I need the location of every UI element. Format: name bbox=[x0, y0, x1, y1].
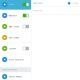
staticText: Location bbox=[9, 47, 16, 50]
staticText: Nearby devices bbox=[9, 75, 22, 78]
staticText: Data usage bbox=[9, 36, 19, 39]
staticText: Connected bbox=[33, 9, 42, 12]
staticText: SCANNING bbox=[71, 2, 78, 4]
button[interactable]: Bluetooth bbox=[0, 10, 31, 21]
button[interactable]: Data usage bbox=[0, 32, 31, 43]
staticText: Flight mode bbox=[9, 25, 19, 28]
staticText: Bluetooth bbox=[9, 14, 17, 17]
staticText: More networks bbox=[9, 58, 24, 61]
button[interactable]: More networks bbox=[0, 54, 31, 65]
button[interactable]: Nearby devices bbox=[0, 72, 31, 80]
staticText: Wi-Fi bbox=[9, 3, 13, 6]
button[interactable]: Location bbox=[0, 43, 31, 54]
staticText: CONNECT AND SHARE bbox=[2, 69, 17, 71]
staticText: WI-FI NETWORKS bbox=[33, 2, 43, 4]
button[interactable]: Wi-Fi bbox=[0, 0, 31, 10]
button[interactable]: Flight mode bbox=[0, 21, 31, 32]
